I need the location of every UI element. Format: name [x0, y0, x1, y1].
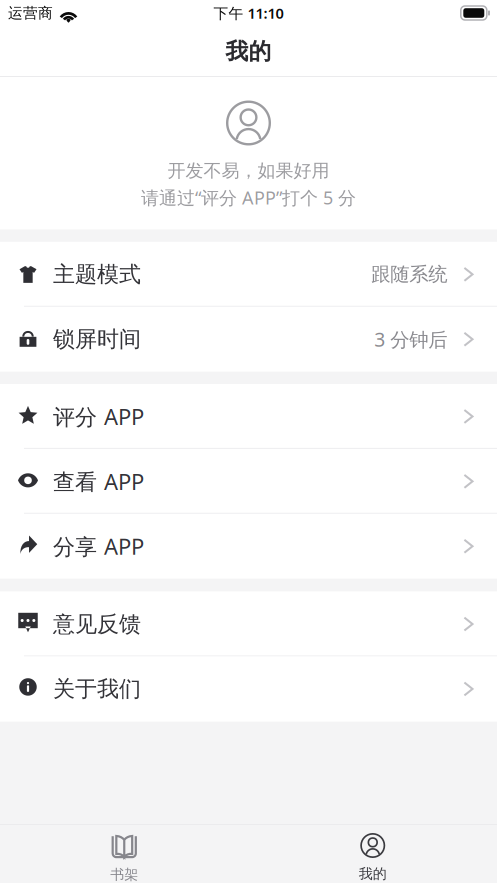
- button[interactable]: 评分 APP: [0, 384, 497, 449]
- staticText: 跟随系统: [371, 262, 447, 287]
- staticText: 我的: [359, 865, 387, 883]
- button[interactable]: 主题模式: [0, 242, 497, 307]
- staticText: 关于我们: [53, 675, 141, 703]
- button[interactable]: 锁屏时间: [0, 307, 497, 372]
- staticText: 分享 APP: [53, 531, 144, 561]
- staticText: 3 分钟后: [374, 326, 447, 352]
- staticText: 下午 11:10: [213, 3, 283, 23]
- staticText: 锁屏时间: [53, 325, 141, 353]
- button[interactable]: 书架: [0, 824, 248, 883]
- button[interactable]: 意见反馈: [0, 592, 497, 656]
- staticText: 我的: [225, 38, 271, 65]
- button[interactable]: 我的: [248, 824, 497, 883]
- staticText: 开发不易，如果好用: [167, 159, 329, 182]
- staticText: 请通过“评分 APP”打个 5 分: [141, 185, 356, 210]
- staticText: 主题模式: [53, 260, 141, 288]
- button[interactable]: 查看 APP: [0, 449, 497, 514]
- button[interactable]: 分享 APP: [0, 514, 497, 579]
- button[interactable]: 关于我们: [0, 656, 497, 721]
- staticText: 评分 APP: [53, 401, 144, 431]
- staticText: 意见反馈: [53, 610, 141, 638]
- staticText: 运营商: [8, 4, 53, 22]
- staticText: 查看 APP: [53, 466, 144, 496]
- staticText: 书架: [110, 866, 138, 883]
